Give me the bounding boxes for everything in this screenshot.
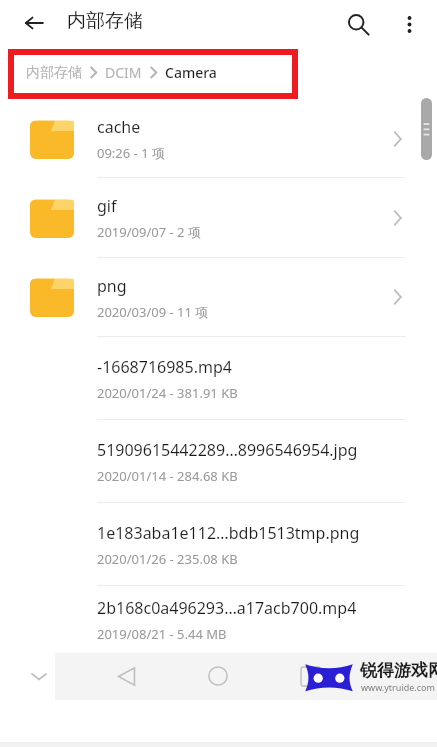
staticText: 内部存储 [26,64,82,82]
button[interactable]: More options [396,10,422,38]
staticText: png [97,275,127,297]
button[interactable]: Recents [290,662,330,690]
staticText: 2020/01/14 - 284.68 KB [97,467,238,485]
button[interactable]: cache [0,100,437,178]
staticText: DCIM [105,63,142,82]
button[interactable]: 2b168c0a496293…a17acb700.mp4 [0,586,437,653]
staticText: 2020/01/24 - 381.91 KB [97,384,238,402]
staticText: 1e183aba1e112…bdb1513tmp.png [97,522,360,544]
button[interactable]: 51909615442289…8996546954.jpg [0,420,437,503]
staticText: 51909615442289…8996546954.jpg [97,439,358,461]
staticText: 2b168c0a496293…a17acb700.mp4 [97,597,357,619]
button[interactable]: png [0,258,437,337]
button[interactable]: Search [342,10,374,38]
staticText: 2020/01/26 - 235.08 KB [97,550,238,568]
staticText: -1668716985.mp4 [97,356,232,378]
staticText: www.ytruide.com [361,681,435,693]
staticText: 锐得游戏网 [360,660,437,681]
button[interactable]: -1668716985.mp4 [0,337,437,420]
staticText: cache [97,116,141,138]
button[interactable]: gif [0,178,437,258]
staticText: 2020/03/09 - 11 项 [97,303,209,321]
button[interactable]: 1e183aba1e112…bdb1513tmp.png [0,503,437,586]
button[interactable]: Back [17,11,51,35]
button[interactable]: Hide [22,664,55,688]
staticText: 2019/08/21 - 5.44 MB [97,625,227,643]
staticText: 2019/09/07 - 2 项 [97,223,201,241]
staticText: 09:26 - 1 项 [97,144,165,162]
staticText: 内部存储 [67,9,143,33]
button[interactable]: 内部存储 [26,63,217,82]
button[interactable]: Back [106,662,146,690]
staticText: Camera [165,63,217,82]
staticText: gif [97,195,117,217]
button[interactable]: Home [198,662,238,690]
